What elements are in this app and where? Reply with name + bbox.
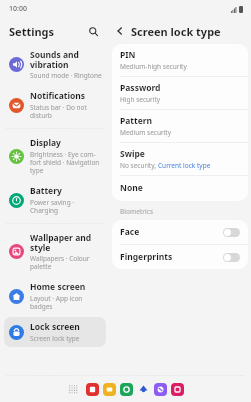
staticText: Brightness · Eye com- fort shield · Navi…: [30, 150, 100, 175]
button[interactable]: Back: [112, 23, 128, 39]
staticText: 10:00: [9, 4, 27, 14]
button[interactable]: messages: [137, 383, 150, 396]
button[interactable]: files: [103, 383, 116, 396]
staticText: Screen lock type: [30, 334, 80, 343]
staticText: Status bar · Do not disturb: [30, 103, 87, 120]
staticText: Battery: [30, 185, 62, 197]
staticText: Display: [30, 137, 61, 149]
button[interactable]: gallery: [171, 383, 184, 396]
staticText: Notifications: [30, 90, 86, 102]
button[interactable]: Settings: [9, 24, 55, 39]
button[interactable]: Battery: [4, 181, 106, 219]
button[interactable]: Display: [4, 133, 106, 179]
staticText: Home screen: [30, 281, 86, 293]
staticText: Medium security: [120, 128, 171, 137]
staticText: Layout · App icon badges: [30, 294, 83, 311]
staticText: Face: [120, 226, 223, 238]
staticText: Power saving · Charging: [30, 198, 75, 215]
staticText: Pattern: [120, 115, 153, 127]
button[interactable]: [223, 228, 240, 237]
button[interactable]: None: [112, 176, 248, 201]
button[interactable]: assistant: [154, 383, 167, 396]
button[interactable]: [223, 253, 240, 262]
button[interactable]: Lock screen: [4, 317, 106, 347]
staticText: Sounds and vibration: [30, 49, 79, 70]
staticText: Sound mode · Ringtone: [30, 71, 102, 80]
button[interactable]: Search: [84, 22, 102, 40]
button[interactable]: PIN: [112, 44, 248, 76]
button[interactable]: chat: [86, 383, 99, 396]
button[interactable]: Sounds and vibration: [4, 45, 106, 84]
staticText: PIN: [120, 49, 136, 61]
staticText: High security: [120, 95, 161, 104]
button[interactable]: Home screen: [4, 277, 106, 315]
button[interactable]: Face: [112, 220, 248, 244]
button[interactable]: Swipe: [112, 143, 248, 175]
button[interactable]: Notifications: [4, 86, 106, 124]
staticText: Biometrics: [120, 207, 154, 216]
staticText: Fingerprints: [120, 251, 223, 263]
staticText: No security,: [120, 161, 158, 170]
staticText: Wallpapers · Colour palette: [30, 254, 90, 271]
button[interactable]: phone: [120, 383, 133, 396]
button[interactable]: Password: [112, 77, 248, 109]
staticText: Screen lock type: [131, 24, 221, 39]
staticText: Medium-high security: [120, 62, 187, 71]
staticText: Current lock type: [158, 161, 211, 170]
button[interactable]: Fingerprints: [112, 245, 248, 269]
staticText: Wallpaper and style: [30, 232, 92, 253]
button[interactable]: Pattern: [112, 110, 248, 142]
button[interactable]: Apps: [66, 382, 80, 396]
staticText: Swipe: [120, 148, 145, 160]
staticText: Password: [120, 82, 161, 94]
staticText: Lock screen: [30, 321, 80, 333]
button[interactable]: Wallpaper and style: [4, 228, 106, 275]
staticText: None: [120, 182, 143, 194]
